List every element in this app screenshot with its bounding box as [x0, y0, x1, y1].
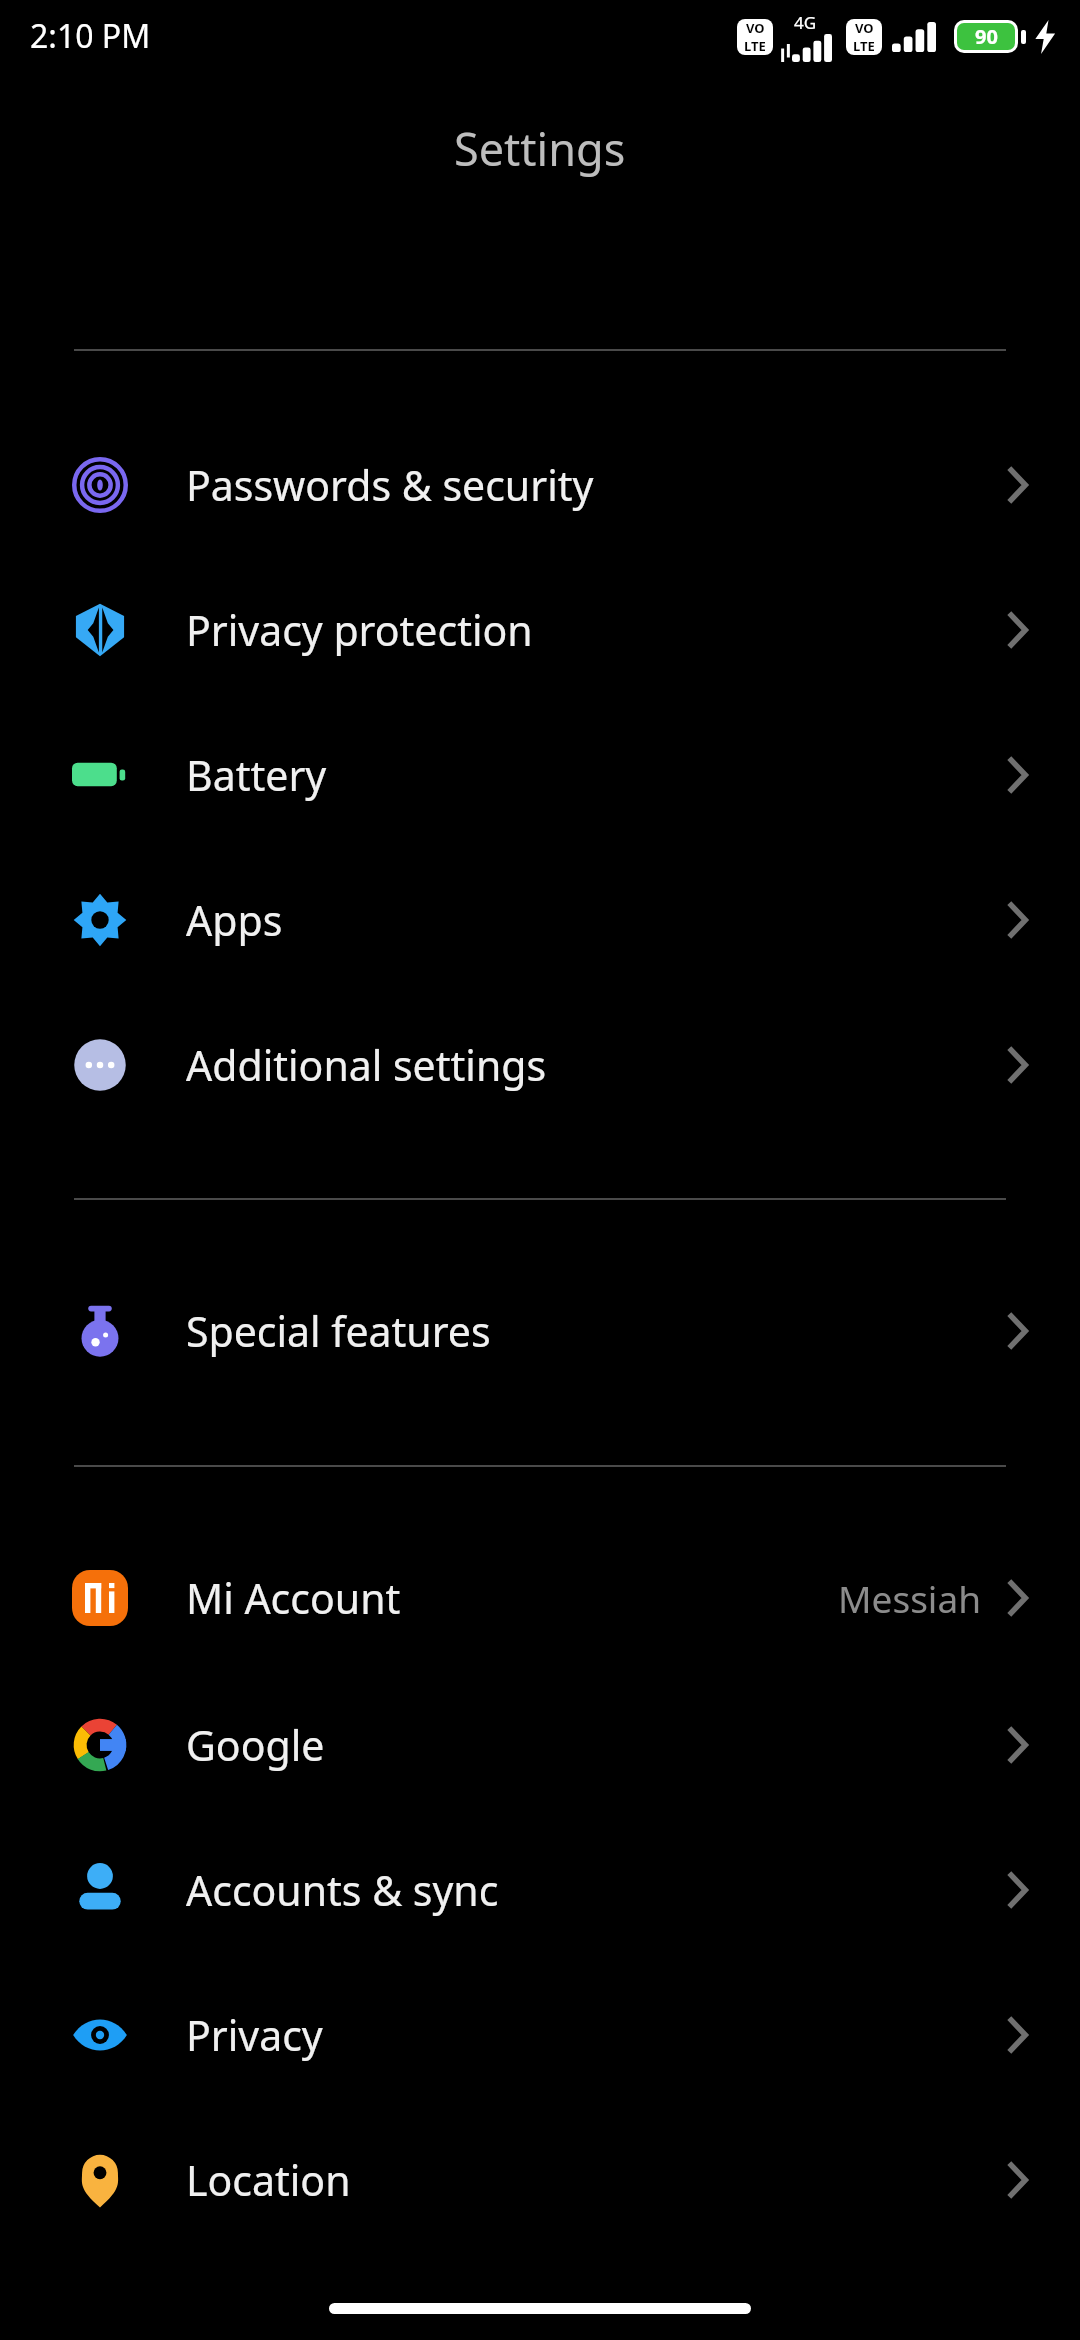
- button[interactable]: Apps: [0, 847, 1080, 993]
- staticText: Mi Account: [186, 1570, 401, 1626]
- button[interactable]: Special features: [0, 1258, 1080, 1404]
- staticText: Passwords & security: [186, 457, 594, 513]
- staticText: 90: [975, 23, 998, 50]
- staticText: Location: [186, 2152, 351, 2208]
- staticText: 4G: [794, 11, 817, 34]
- other: Open Apps: [1006, 899, 1028, 941]
- staticText: Battery: [186, 747, 327, 803]
- other: Open Battery: [1006, 754, 1028, 796]
- other: Open Privacy: [1006, 2014, 1028, 2056]
- button[interactable]: Location: [0, 2107, 1080, 2253]
- other: Open Additional settings: [1006, 1044, 1028, 1086]
- other: Open Mi Account: [1006, 1577, 1028, 1619]
- other: Open Google: [1006, 1724, 1028, 1766]
- staticText: Google: [186, 1717, 325, 1773]
- staticText: Special features: [186, 1303, 491, 1359]
- staticText: VO: [746, 19, 765, 37]
- staticText: LTE: [853, 37, 875, 55]
- staticText: Additional settings: [186, 1037, 547, 1093]
- staticText: Apps: [186, 892, 283, 948]
- button[interactable]: Accounts & sync: [0, 1817, 1080, 1963]
- staticText: Settings: [454, 118, 626, 179]
- staticText: Accounts & sync: [186, 1862, 499, 1918]
- other: Open Accounts & sync: [1006, 1869, 1028, 1911]
- button[interactable]: Battery: [0, 702, 1080, 848]
- other: Open Location: [1006, 2159, 1028, 2201]
- staticText: LTE: [744, 37, 766, 55]
- staticText: VO: [855, 19, 874, 37]
- button[interactable]: Google: [0, 1672, 1080, 1818]
- other: Open Privacy protection: [1006, 609, 1028, 651]
- button[interactable]: Mi Account: [0, 1525, 1080, 1671]
- other: Open Passwords & security: [1006, 464, 1028, 506]
- staticText: 2:10 PM: [30, 14, 151, 58]
- other: Open Special features: [1006, 1310, 1028, 1352]
- button[interactable]: Privacy protection: [0, 557, 1080, 703]
- button[interactable]: Additional settings: [0, 992, 1080, 1138]
- staticText: Privacy: [186, 2007, 323, 2063]
- button[interactable]: Passwords & security: [0, 412, 1080, 558]
- staticText: Privacy protection: [186, 602, 533, 658]
- button[interactable]: Privacy: [0, 1962, 1080, 2108]
- staticText: Messiah: [838, 1573, 982, 1623]
